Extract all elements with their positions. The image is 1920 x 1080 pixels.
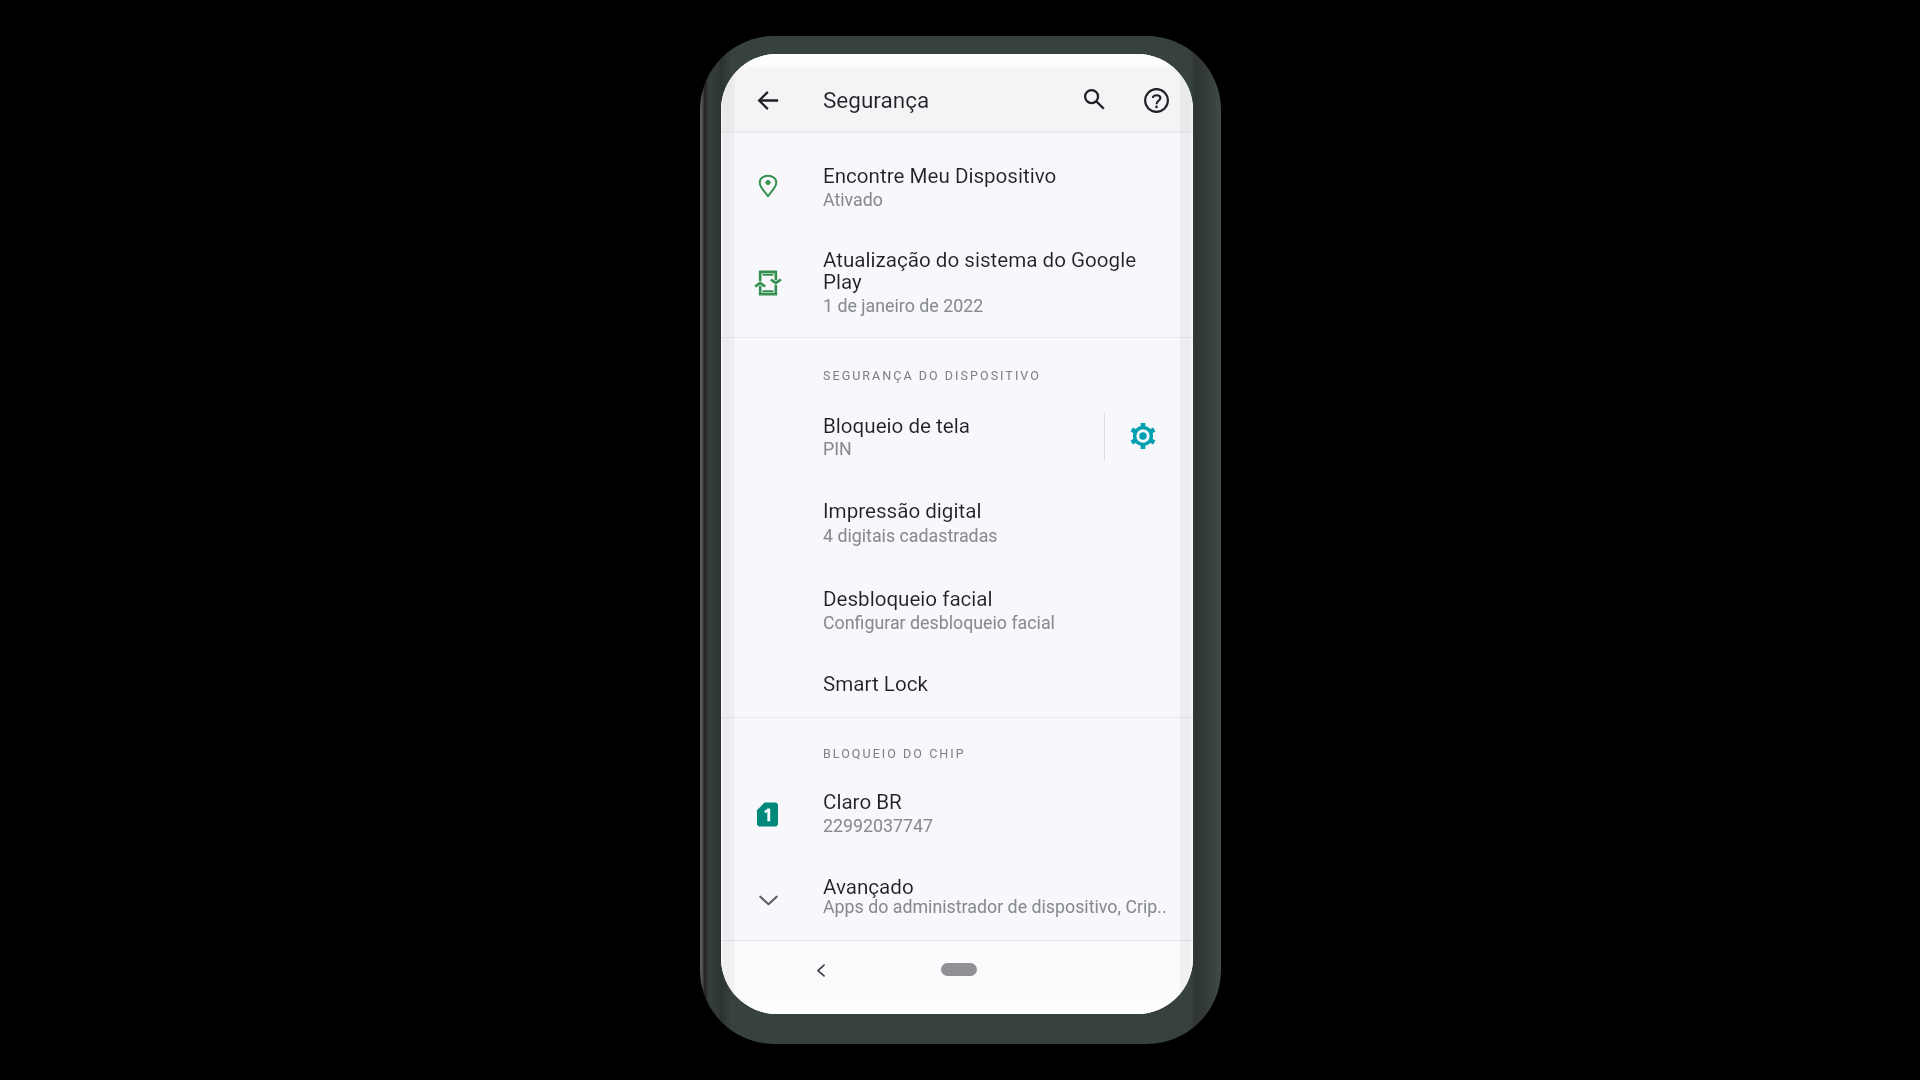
staticText: SEGURANÇA DO DISPOSITIVO (823, 368, 1041, 383)
staticText: Desbloqueio facial (823, 587, 993, 611)
staticText: Impressão digital (823, 499, 982, 523)
button[interactable]: Lock screen settings (1121, 414, 1165, 458)
staticText: Configurar desbloqueio facial (823, 612, 1055, 633)
staticText: Ativado (823, 189, 883, 210)
button[interactable] (721, 395, 1103, 461)
staticText: 22992037747 (823, 815, 934, 836)
button[interactable] (721, 862, 1193, 924)
staticText: Avançado (823, 875, 914, 899)
staticText: Bloqueio de tela (823, 414, 970, 438)
staticText: 4 digitais cadastradas (823, 525, 998, 546)
button[interactable] (721, 777, 1193, 839)
staticText: Apps do administrador de dispositivo, Cr… (823, 896, 1167, 917)
staticText: Encontre Meu Dispositivo (823, 164, 1057, 188)
button[interactable]: Back (799, 948, 843, 992)
button[interactable] (721, 478, 1193, 544)
staticText: Atualização do sistema do Google Play (823, 248, 1141, 294)
button[interactable] (721, 565, 1193, 631)
button[interactable]: Home (941, 963, 977, 976)
button[interactable]: Help (1134, 78, 1178, 122)
staticText: BLOQUEIO DO CHIP (823, 746, 966, 761)
button[interactable] (721, 135, 1193, 223)
button[interactable]: Back (746, 78, 790, 122)
staticText: Segurança (823, 87, 930, 113)
staticText: 1 de janeiro de 2022 (823, 295, 984, 316)
staticText: Smart Lock (823, 672, 928, 696)
button[interactable]: Search (1072, 77, 1116, 121)
button[interactable] (721, 223, 1193, 337)
staticText: PIN (823, 438, 852, 459)
button[interactable] (721, 658, 1193, 708)
staticText: Claro BR (823, 790, 902, 814)
